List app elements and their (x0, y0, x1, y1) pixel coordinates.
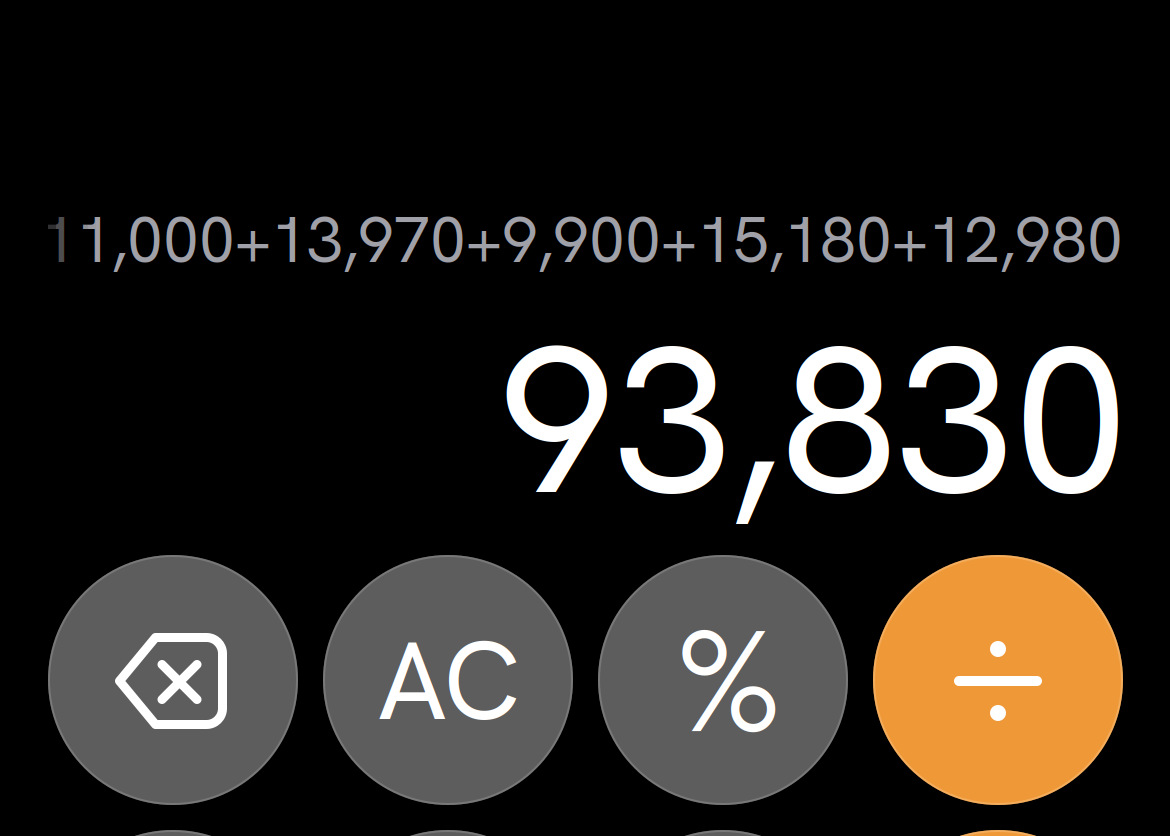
staticText: 411,000+13,970+9,900+15,180+12,980 (4, 198, 1123, 281)
button[interactable]: Multiply (873, 830, 1123, 836)
staticText: AC (377, 610, 520, 752)
button[interactable]: 8 (323, 830, 573, 836)
button[interactable]: 9 (598, 830, 848, 836)
staticText: 93,830 (499, 285, 1129, 555)
button[interactable]: Divide (873, 555, 1123, 805)
button[interactable]: Delete (48, 555, 298, 805)
button[interactable]: AC (323, 555, 573, 805)
button[interactable]: 7 (48, 830, 298, 836)
button[interactable]: % (598, 555, 848, 805)
staticText: % (675, 587, 783, 775)
